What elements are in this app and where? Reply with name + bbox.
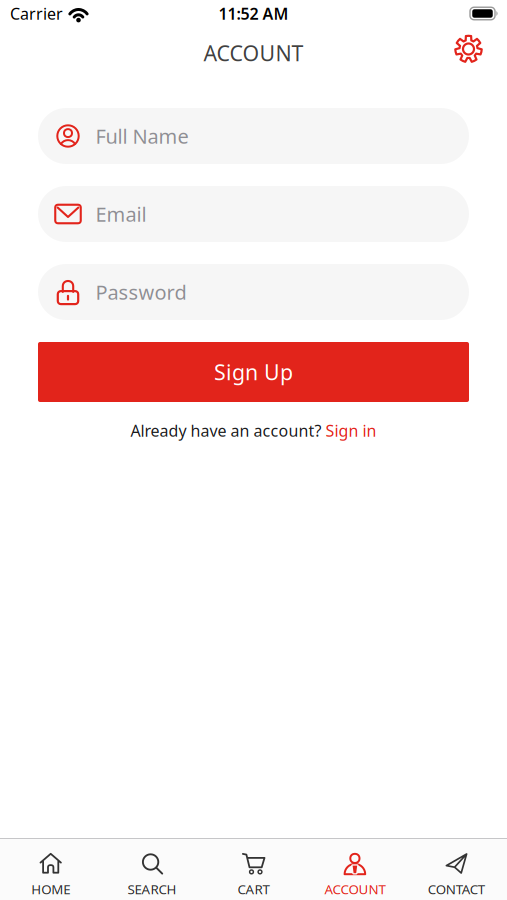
button[interactable]: Full Name <box>38 108 469 164</box>
staticText: SEARCH <box>128 880 177 898</box>
staticText: ACCOUNT <box>203 39 303 67</box>
staticText: ACCOUNT <box>324 880 385 898</box>
staticText: CONTACT <box>428 880 485 898</box>
button[interactable]: ACCOUNT <box>304 839 406 900</box>
button[interactable]: Email <box>38 186 469 242</box>
staticText: Email <box>95 201 146 227</box>
staticText: 11:52 AM <box>218 3 288 24</box>
button[interactable]: Sign in <box>325 420 376 441</box>
button[interactable]: SEARCH <box>101 839 203 900</box>
staticText: HOME <box>31 880 70 898</box>
staticText: CART <box>237 880 269 898</box>
staticText: Carrier <box>10 3 63 24</box>
button[interactable]: Settings <box>454 34 483 63</box>
button[interactable]: Password <box>38 264 469 320</box>
staticText: Sign in <box>325 420 376 441</box>
staticText: Full Name <box>95 123 188 149</box>
button[interactable]: Sign Up <box>38 342 469 402</box>
button[interactable]: CONTACT <box>406 839 507 900</box>
button[interactable]: CART <box>203 839 304 900</box>
staticText: Sign Up <box>214 358 293 386</box>
button[interactable]: HOME <box>0 839 101 900</box>
staticText: Password <box>95 279 186 305</box>
staticText: Already have an account? <box>130 420 321 441</box>
